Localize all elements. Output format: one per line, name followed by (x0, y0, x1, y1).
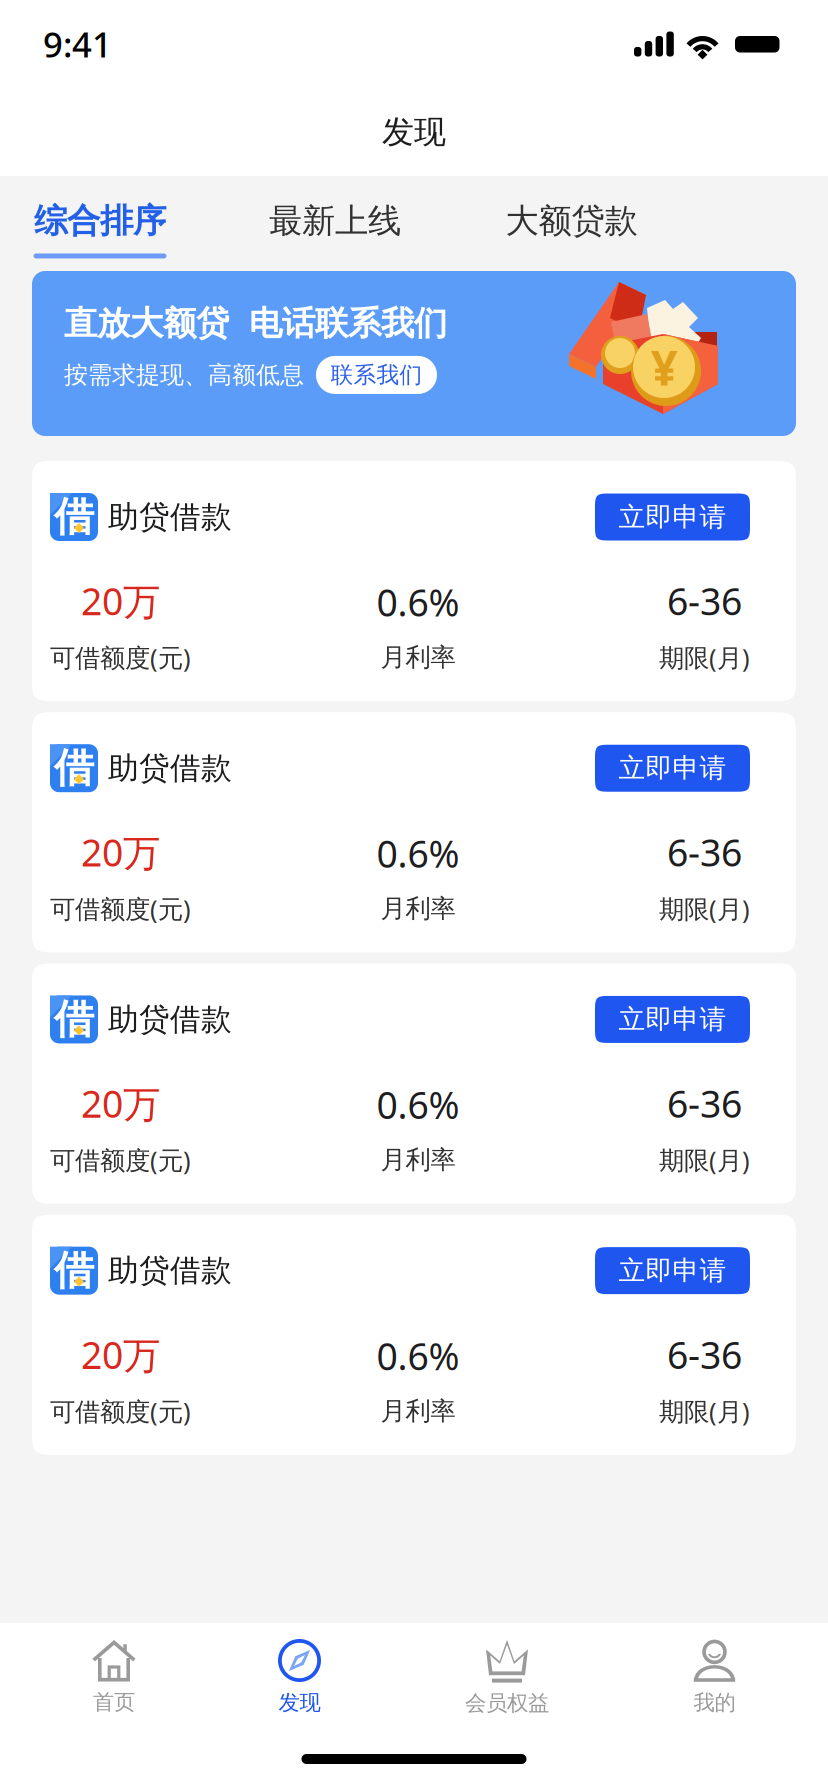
staticText: 20万 (81, 576, 160, 626)
staticText: 联系我们 (330, 361, 422, 389)
button[interactable]: 立即申请 (595, 1247, 750, 1294)
staticText: 月利率 (380, 642, 455, 673)
staticText: 直放大额贷 电话联系我们 (64, 303, 447, 344)
staticText: 助贷借款 (108, 1252, 232, 1289)
button[interactable]: 立即申请 (595, 493, 750, 540)
button[interactable]: 会员权益 (371, 1638, 643, 1716)
staticText: 20万 (81, 1078, 160, 1128)
staticText: 6-36 (667, 1330, 742, 1379)
staticText: 可借额度(元) (50, 892, 191, 925)
staticText: 9:41 (43, 21, 112, 67)
staticText: 期限(月) (659, 1394, 750, 1428)
staticText: 可借额度(元) (50, 1143, 191, 1177)
staticText: 20万 (81, 827, 160, 877)
staticText: 按需求提现、高额低息 (64, 360, 304, 390)
button[interactable]: 最新上线 (268, 175, 401, 271)
staticText: 首页 (93, 1689, 135, 1715)
staticText: 20万 (81, 1330, 160, 1379)
staticText: 立即申请 (618, 752, 726, 785)
staticText: 6-36 (667, 1078, 742, 1128)
staticText: 立即申请 (618, 1254, 726, 1287)
button[interactable]: 首页 (0, 1639, 228, 1715)
staticText: 0.6% (376, 1331, 459, 1380)
staticText: 我的 (693, 1689, 735, 1716)
staticText: 助贷借款 (108, 498, 232, 536)
button[interactable]: 大额贷款 (505, 175, 638, 271)
staticText: 月利率 (380, 1395, 455, 1427)
staticText: 期限(月) (659, 1143, 750, 1177)
button[interactable]: 发现 (228, 1638, 371, 1716)
staticText: 可借额度(元) (50, 1394, 191, 1428)
staticText: 发现 (278, 1689, 320, 1716)
staticText: 立即申请 (618, 501, 726, 533)
staticText: 助贷借款 (108, 1001, 232, 1038)
staticText: 最新上线 (269, 200, 401, 241)
staticText: 可借额度(元) (50, 641, 191, 674)
button[interactable]: 我的 (643, 1638, 786, 1716)
staticText: 大额贷款 (505, 200, 637, 241)
staticText: 0.6% (376, 828, 459, 878)
staticText: 月利率 (380, 893, 455, 924)
staticText: 综合排序 (34, 200, 166, 241)
staticText: 立即申请 (618, 1003, 726, 1036)
button[interactable]: 综合排序 (33, 175, 166, 271)
staticText: 借 (54, 1246, 94, 1295)
button[interactable]: 立即申请 (595, 745, 750, 792)
staticText: 0.6% (376, 577, 459, 627)
staticText: 会员权益 (465, 1690, 549, 1716)
button[interactable]: ¥ (0, 271, 828, 436)
staticText: 6-36 (667, 576, 742, 626)
staticText: ¥ (650, 335, 677, 399)
staticText: 6-36 (667, 827, 742, 877)
staticText: 发现 (382, 112, 446, 152)
staticText: 借 (54, 744, 94, 793)
button[interactable]: 立即申请 (595, 996, 750, 1043)
staticText: 期限(月) (659, 641, 750, 674)
staticText: 借 (54, 492, 94, 541)
staticText: 期限(月) (659, 892, 750, 925)
staticText: 借 (54, 995, 94, 1044)
staticText: 月利率 (380, 1144, 455, 1175)
staticText: 0.6% (376, 1080, 459, 1129)
staticText: 助贷借款 (108, 749, 232, 787)
